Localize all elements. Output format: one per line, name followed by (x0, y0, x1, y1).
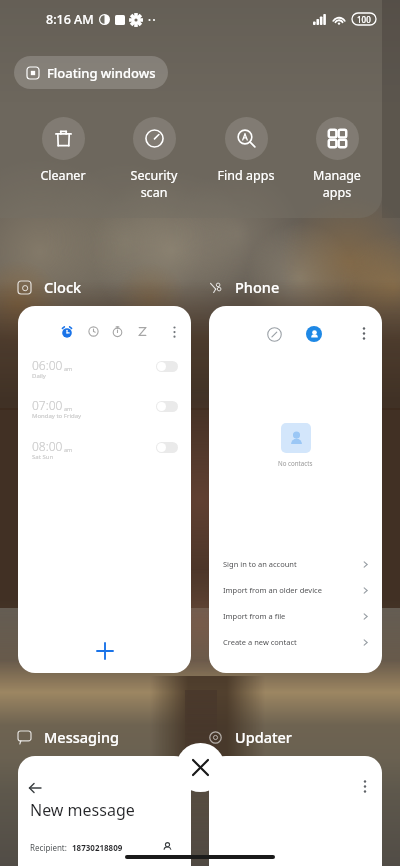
button[interactable]: Clock (18, 277, 82, 297)
staticText: Recipient: (30, 842, 67, 853)
staticText: 07:00 (32, 397, 63, 413)
staticText: Sat Sun (32, 453, 54, 461)
button[interactable] (156, 361, 178, 372)
staticText: 18730218809 (72, 842, 123, 853)
staticText: am (64, 365, 73, 372)
button[interactable]: Updater (209, 727, 292, 747)
staticText: am (64, 446, 73, 453)
button[interactable]: Cleaner (18, 117, 108, 184)
button[interactable]: Sign in to an account (209, 551, 382, 577)
button[interactable] (209, 756, 382, 866)
staticText: New message (30, 799, 135, 821)
button[interactable]: Manage apps (292, 117, 382, 200)
button[interactable]: New message (18, 756, 191, 866)
button[interactable] (156, 442, 178, 453)
staticText: 06:00 (32, 357, 63, 373)
staticText: Floating windows (47, 64, 156, 82)
button[interactable]: No contacts (209, 306, 382, 673)
button[interactable]: Messaging (18, 727, 120, 747)
staticText: Import from an older device (223, 585, 322, 595)
staticText: Sign in to an account (223, 559, 297, 569)
staticText: 8:16 AM (46, 11, 94, 28)
staticText: Create a new contact (223, 637, 297, 647)
button[interactable]: Floating windows (14, 56, 168, 89)
staticText: am (64, 405, 73, 412)
staticText: Phone (235, 277, 280, 297)
button[interactable]: Phone (209, 277, 280, 297)
staticText: Messaging (44, 727, 120, 747)
staticText: Daily (32, 372, 46, 380)
button[interactable]: Create a new contact (209, 629, 382, 655)
staticText: 08:00 (32, 438, 63, 454)
button[interactable]: Security scan (109, 117, 199, 200)
button[interactable]: Import from an older device (209, 577, 382, 603)
staticText: Monday to Friday (32, 412, 82, 420)
staticText: 100 (357, 14, 371, 25)
button[interactable] (156, 401, 178, 412)
staticText: No contacts (278, 459, 313, 467)
staticText: Cleaner (18, 167, 108, 184)
staticText: Updater (235, 727, 292, 747)
staticText: Manage apps (292, 167, 382, 200)
staticText: Security scan (109, 167, 199, 200)
staticText: Find apps (201, 167, 291, 184)
staticText: Import from a file (223, 611, 286, 621)
button[interactable]: 06:00 (18, 306, 191, 673)
button[interactable]: Find apps (201, 117, 291, 184)
staticText: Clock (44, 277, 82, 297)
button[interactable]: Import from a file (209, 603, 382, 629)
button[interactable]: Close all (176, 743, 225, 792)
